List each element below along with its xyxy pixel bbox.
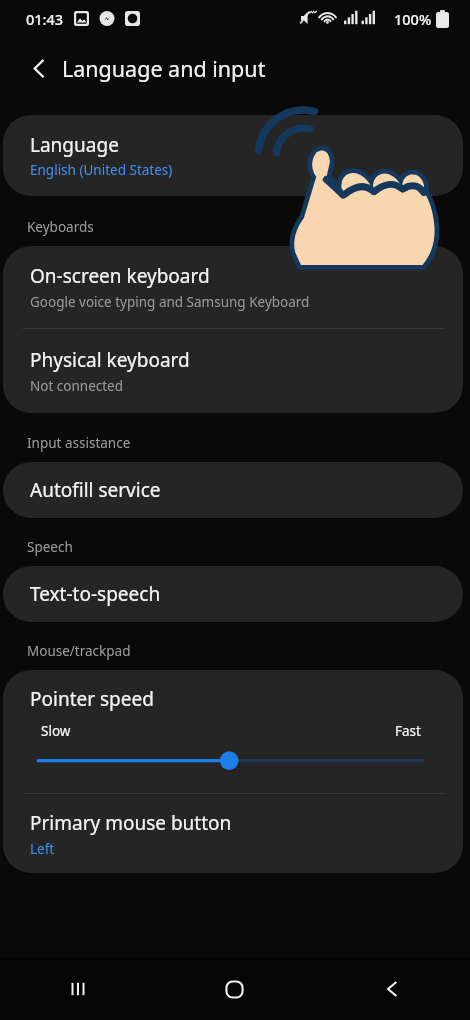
button[interactable]: Pointer speed [3, 748, 463, 776]
staticText: Left [30, 840, 55, 858]
staticText: On-screen keyboard [30, 263, 210, 289]
staticText: 100% [394, 9, 432, 29]
button[interactable]: Home [156, 958, 313, 1020]
staticText: Text-to-speech [30, 581, 161, 607]
staticText: Language and input [62, 54, 266, 83]
staticText: 01:43 [26, 9, 64, 29]
button[interactable]: Recent apps [0, 958, 156, 1020]
button[interactable]: Back [313, 958, 470, 1020]
staticText: Slow [41, 722, 71, 740]
staticText: Physical keyboard [30, 347, 190, 373]
staticText: Primary mouse button [30, 810, 232, 836]
staticText: Speech [27, 538, 73, 556]
staticText: Mouse/trackpad [27, 642, 131, 660]
staticText: Input assistance [27, 434, 131, 452]
button[interactable]: On-screen keyboard [3, 246, 463, 328]
staticText: Autofill service [30, 477, 161, 503]
button[interactable]: Autofill service [3, 462, 463, 518]
button[interactable]: Navigate up [17, 46, 61, 90]
staticText: Keyboards [27, 218, 94, 236]
button[interactable]: Text-to-speech [3, 566, 463, 622]
staticText: English (United States) [30, 161, 173, 179]
staticText: Language [30, 132, 119, 158]
button[interactable]: Language [3, 115, 463, 196]
staticText: Not connected [30, 377, 124, 395]
button[interactable]: On-screen keyboard [3, 246, 463, 413]
staticText: Fast [395, 722, 421, 740]
button[interactable]: Pointer speed [3, 670, 463, 873]
button[interactable]: Primary mouse button [3, 794, 463, 873]
staticText: Google voice typing and Samsung Keyboard [30, 293, 310, 311]
other: Tap here [262, 120, 444, 265]
staticText: Pointer speed [30, 686, 154, 712]
button[interactable]: Physical keyboard [3, 329, 463, 413]
